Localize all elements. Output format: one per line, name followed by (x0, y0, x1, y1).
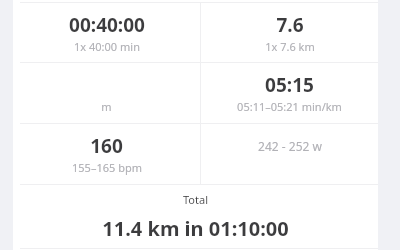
staticText: 242 - 252 w (258, 138, 322, 154)
staticText: 05:11–05:21 min/km (237, 99, 342, 114)
staticText: m (101, 99, 112, 114)
staticText: Total (183, 192, 208, 207)
button[interactable]: Total (13, 185, 378, 248)
staticText: 1x 40:00 min (74, 39, 140, 54)
staticText: 1x 7.6 km (265, 39, 315, 54)
staticText: 05:15 (265, 72, 314, 98)
button[interactable]: 05:15 (201, 63, 378, 123)
button[interactable]: 242 - 252 w (201, 124, 378, 184)
staticText: 160 (90, 133, 123, 159)
button[interactable]: m (13, 63, 200, 123)
staticText: 7.6 (276, 12, 304, 38)
button[interactable]: 00:40:00 (13, 3, 200, 62)
button[interactable]: 160 (13, 124, 200, 184)
staticText: 155–165 bpm (72, 160, 142, 175)
staticText: 11.4 km in 01:10:00 (102, 215, 289, 242)
staticText: 00:40:00 (69, 12, 145, 38)
button[interactable]: 7.6 (201, 3, 378, 62)
